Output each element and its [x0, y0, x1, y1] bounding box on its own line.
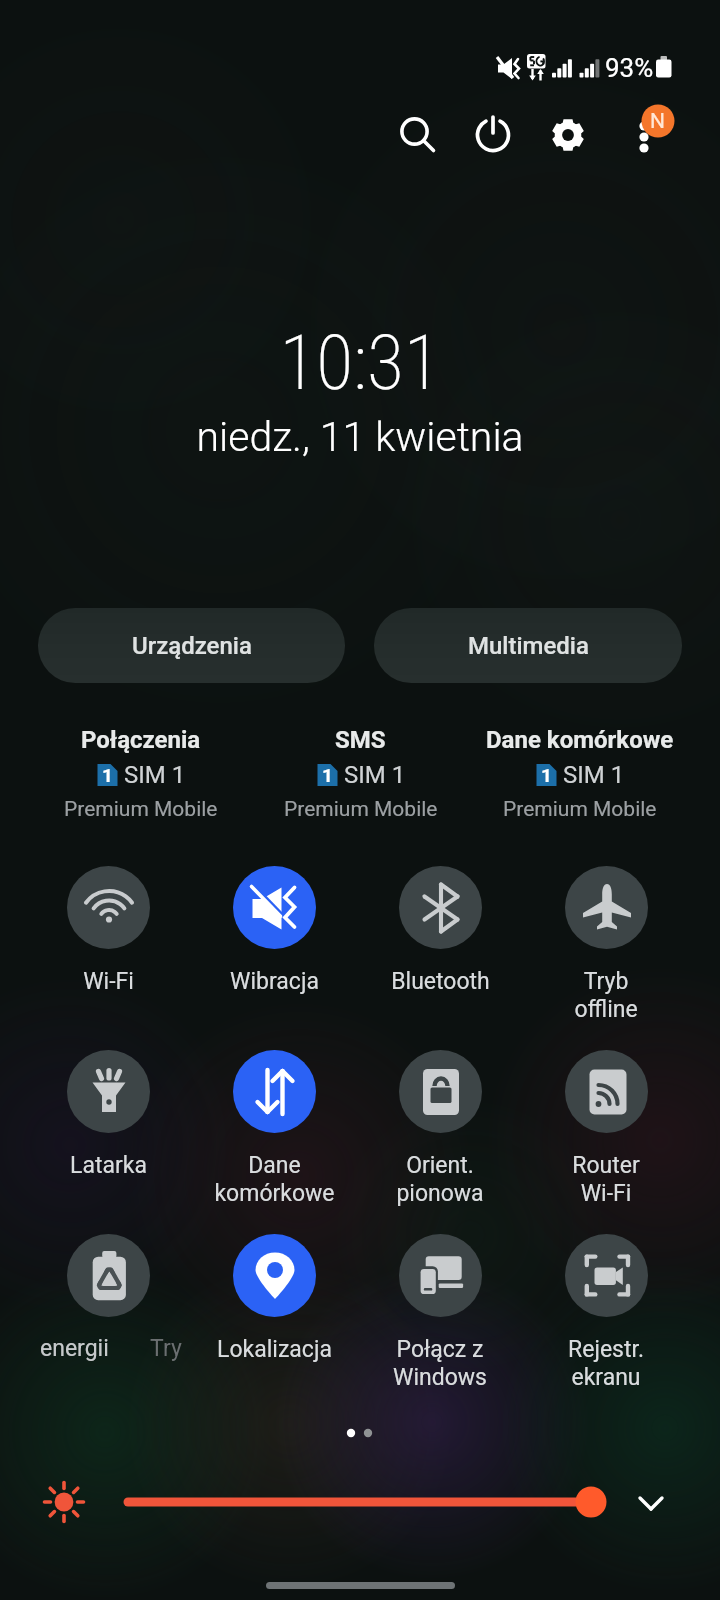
staticText: Premium Mobile — [284, 797, 438, 822]
button[interactable]: Orient. pionowa — [357, 1050, 523, 1207]
staticText: Tryb offline — [574, 968, 638, 1023]
staticText: Orient. pionowa — [396, 1152, 484, 1207]
button[interactable]: Search — [390, 108, 444, 162]
staticText: 10:31 — [279, 318, 441, 407]
staticText: 1 — [322, 764, 333, 786]
button[interactable]: Power off — [466, 108, 520, 162]
staticText: Multimedia — [468, 632, 589, 660]
button[interactable]: Lokalizacja — [191, 1234, 357, 1363]
button[interactable]: Tryb offline — [523, 866, 689, 1023]
button[interactable]: Bluetooth — [357, 866, 523, 995]
staticText: SIM 1 — [124, 761, 186, 789]
staticText: Premium Mobile — [64, 797, 218, 822]
staticText: Połączenia — [81, 726, 201, 754]
staticText: Dane komórkowe — [486, 726, 674, 754]
button[interactable]: Latarka — [25, 1050, 191, 1179]
button[interactable]: Połączenia — [31, 726, 251, 822]
button[interactable] — [25, 1234, 191, 1336]
staticText: Rejestr. ekranu — [568, 1336, 644, 1391]
staticText: 1 — [102, 764, 113, 786]
button[interactable]: Dane komórkowe — [470, 726, 689, 822]
button[interactable]: Brightness — [36, 1474, 92, 1530]
button[interactable]: Brightness slider — [110, 1478, 614, 1526]
staticText: SIM 1 — [344, 761, 406, 789]
button[interactable]: Wibracja — [191, 866, 357, 995]
button[interactable]: Dane komórkowe — [191, 1050, 357, 1207]
staticText: Premium Mobile — [503, 797, 657, 822]
button[interactable]: Settings — [541, 108, 595, 162]
staticText: Try — [150, 1335, 182, 1362]
staticText: Lokalizacja — [217, 1336, 332, 1363]
staticText: 93% — [605, 53, 654, 83]
staticText: niedz., 11 kwietnia — [196, 413, 524, 461]
button[interactable]: Połącz z Windows — [357, 1234, 523, 1391]
staticText: Wibracja — [230, 968, 319, 995]
staticText: N — [650, 109, 665, 134]
staticText: SMS — [335, 726, 386, 754]
staticText: Bluetooth — [391, 968, 490, 995]
button[interactable]: Rejestr. ekranu — [523, 1234, 689, 1391]
button[interactable]: Wi-Fi — [25, 866, 191, 995]
staticText: Latarka — [70, 1152, 147, 1179]
staticText: SIM 1 — [563, 761, 625, 789]
staticText: 1 — [541, 764, 552, 786]
button[interactable]: More options — [622, 98, 684, 160]
button[interactable]: Multimedia — [374, 608, 682, 683]
button[interactable]: SMS — [251, 726, 470, 822]
staticText: Urządzenia — [132, 632, 252, 660]
button[interactable]: Urządzenia — [38, 608, 345, 683]
staticText: Dane komórkowe — [214, 1152, 335, 1207]
button[interactable]: Router Wi-Fi — [523, 1050, 689, 1207]
staticText: Połącz z Windows — [393, 1336, 487, 1391]
staticText: Wi-Fi — [83, 968, 134, 995]
button[interactable]: Expand quick settings — [625, 1477, 677, 1529]
staticText: energii — [40, 1335, 109, 1362]
staticText: Router Wi-Fi — [572, 1152, 640, 1207]
